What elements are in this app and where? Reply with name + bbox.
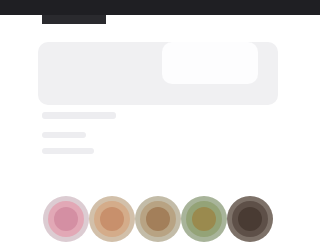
button[interactable] bbox=[38, 42, 278, 105]
